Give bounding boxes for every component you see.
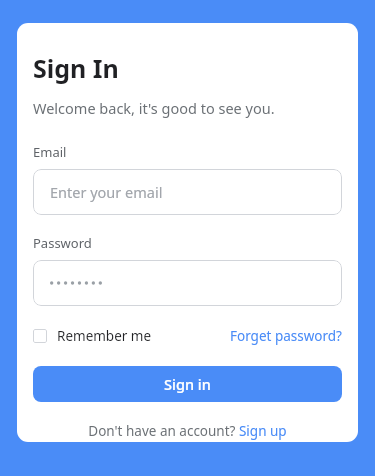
button[interactable]: Sign in <box>33 366 342 402</box>
button[interactable]: Don't have an account? Sign up <box>88 420 287 442</box>
staticText: Remember me <box>57 327 152 345</box>
staticText: Password <box>33 234 92 252</box>
staticText: Don't have an account? Sign up <box>88 422 287 440</box>
staticText: Welcome back, it's good to see you. <box>33 98 275 118</box>
staticText: Forget password? <box>230 327 342 345</box>
button[interactable]: Enter your email <box>33 169 342 215</box>
staticText: Enter your email <box>50 182 163 202</box>
staticText: Email <box>33 143 67 161</box>
button[interactable]: Password <box>33 260 342 306</box>
button[interactable]: Remember me <box>33 324 152 348</box>
button[interactable]: Forget password? <box>230 324 342 348</box>
staticText: Sign in <box>164 374 211 394</box>
staticText: Sign In <box>33 51 119 85</box>
